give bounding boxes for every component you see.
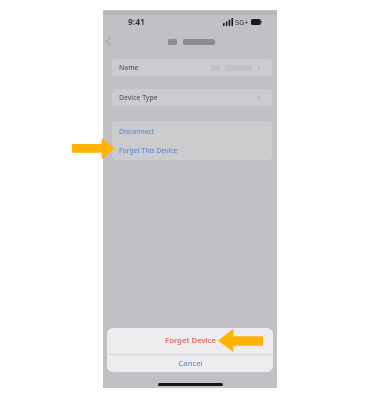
button[interactable]: Cancel	[107, 355, 273, 372]
other: Annotation arrow pointing left	[218, 329, 263, 352]
button[interactable]: Back	[101, 34, 116, 49]
staticText: 5G+	[235, 17, 249, 27]
button[interactable]: Disconnect	[112, 121, 272, 141]
other: Annotation arrow pointing right	[72, 138, 115, 159]
staticText: Forget Device	[165, 335, 216, 346]
staticText: Name	[119, 63, 139, 72]
button[interactable]: Forget Device	[107, 328, 273, 354]
staticText: Disconnect	[119, 127, 155, 136]
staticText: Device Type	[119, 93, 158, 102]
button[interactable]: Forget This Device	[112, 141, 272, 160]
staticText: Forget This Device	[119, 146, 178, 155]
staticText: Cancel	[178, 358, 203, 369]
staticText: 9:41	[128, 16, 145, 28]
button[interactable]: Name	[112, 59, 272, 76]
button[interactable]: Device Type	[112, 89, 272, 106]
